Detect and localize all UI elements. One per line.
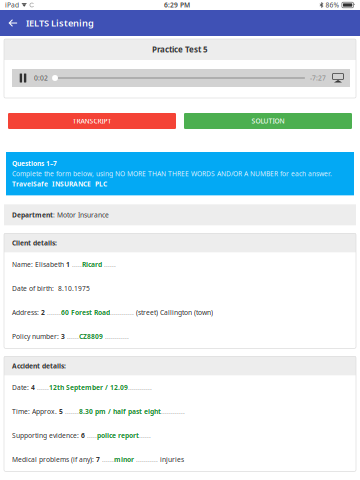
staticText: Accident details: [12, 361, 66, 370]
button[interactable]: AirPlay [326, 69, 350, 87]
staticText: 6 [81, 431, 85, 440]
staticText: ...... [65, 332, 79, 341]
staticText: Name: Elisabeth [12, 260, 66, 269]
staticText: Supporting evidence: [12, 431, 81, 440]
staticText: Ricard [82, 260, 102, 269]
staticText: Complete the form below, using NO MORE T… [12, 169, 332, 178]
staticText: ....... [63, 407, 79, 416]
staticText: ...... [139, 431, 151, 440]
staticText: 7 [96, 455, 100, 464]
staticText: ...... [100, 455, 114, 464]
staticText: ............ [110, 308, 134, 317]
staticText: police report [97, 431, 139, 440]
button[interactable]: SOLUTION [184, 113, 352, 129]
staticText: Time: Approx. [12, 407, 59, 416]
button[interactable]: TRANSCRIPT [8, 113, 176, 129]
staticText: CZ8809 [79, 332, 103, 341]
staticText: minor [114, 455, 134, 464]
staticText: ...... [35, 383, 49, 392]
staticText: Department [12, 210, 53, 219]
staticText: -7:27 [310, 74, 326, 82]
staticText: 5 [59, 407, 63, 416]
staticText: SOLUTION [251, 117, 284, 125]
staticText: : Motor Insurance [53, 210, 109, 219]
staticText: ..... [70, 260, 82, 269]
staticText: 3 [61, 332, 65, 341]
staticText: (street) Callington (town) [134, 308, 213, 317]
staticText: 8.30 pm / half past eight [79, 407, 161, 416]
staticText: 0:02 [34, 74, 48, 82]
staticText: Questions 1–7 [12, 159, 57, 168]
staticText: 12th September / 12.09 [49, 383, 128, 392]
staticText: Date of birth: 8.10.1975 [12, 284, 90, 293]
staticText: TravelSafe INSURANCE PLC [12, 179, 107, 188]
staticText: ............ [103, 332, 129, 341]
staticText: ............ [161, 407, 185, 416]
staticText: IELTS Listening [26, 17, 94, 29]
staticText: injuries [158, 455, 184, 464]
staticText: Client details: [12, 238, 57, 247]
staticText: 4 [31, 383, 35, 392]
staticText: Policy number: [12, 332, 61, 341]
staticText: ............ [128, 383, 152, 392]
staticText: ....... [45, 308, 61, 317]
staticText: TRANSCRIPT [72, 117, 111, 125]
staticText: 2 [41, 308, 45, 317]
staticText: ........... [134, 455, 158, 464]
staticText: 1 [66, 260, 70, 269]
staticText: Medical problems (if any): [12, 455, 96, 464]
button[interactable]: Back [0, 10, 26, 36]
staticText: ..... [85, 431, 97, 440]
staticText: 6:29 PM [164, 1, 190, 9]
staticText: Practice Test 5 [152, 44, 208, 55]
staticText: ...... [102, 260, 116, 269]
staticText: Address: [12, 308, 41, 317]
staticText: Date: [12, 383, 31, 392]
staticText: 60 Forest Road [61, 308, 110, 317]
staticText: 86% [325, 1, 339, 9]
staticText: iPad [5, 1, 19, 9]
button[interactable]: Pause [12, 69, 34, 87]
